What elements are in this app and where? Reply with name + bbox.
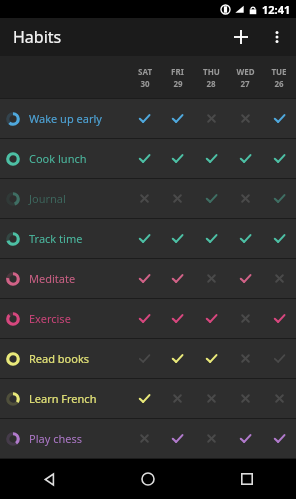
staticText: Meditate: [29, 271, 76, 286]
button[interactable]: [228, 353, 262, 364]
button[interactable]: Wake up early: [0, 99, 296, 138]
staticText: TUE: [271, 66, 287, 77]
button[interactable]: [161, 112, 194, 125]
button[interactable]: [228, 232, 262, 245]
staticText: Learn French: [29, 391, 97, 406]
button[interactable]: Add habit: [222, 18, 260, 56]
button[interactable]: [262, 273, 296, 284]
button[interactable]: Journal: [0, 179, 296, 218]
button[interactable]: [194, 113, 228, 124]
button[interactable]: [194, 152, 228, 165]
button[interactable]: [194, 393, 228, 404]
button[interactable]: [262, 352, 296, 365]
staticText: SAT: [138, 66, 152, 77]
button[interactable]: Recent apps: [197, 459, 296, 499]
button[interactable]: [194, 433, 228, 444]
button[interactable]: [262, 232, 296, 245]
button[interactable]: [128, 112, 161, 125]
button[interactable]: [228, 272, 262, 285]
button[interactable]: [161, 312, 194, 325]
staticText: WED: [236, 66, 255, 77]
button[interactable]: Track time: [0, 219, 296, 258]
button[interactable]: [161, 432, 194, 445]
button[interactable]: [194, 232, 228, 245]
button[interactable]: [161, 352, 194, 365]
staticText: 12:41: [262, 2, 291, 17]
button[interactable]: [228, 313, 262, 324]
staticText: Read books: [29, 351, 90, 366]
button[interactable]: [194, 192, 228, 205]
button[interactable]: [228, 393, 262, 404]
button[interactable]: [228, 193, 262, 204]
staticText: 28: [206, 78, 216, 89]
button[interactable]: [161, 193, 194, 204]
staticText: Cook lunch: [29, 151, 87, 166]
button[interactable]: [194, 352, 228, 365]
button[interactable]: [161, 232, 194, 245]
button[interactable]: [262, 432, 296, 445]
button[interactable]: Home: [98, 459, 197, 499]
button[interactable]: [194, 273, 228, 284]
button[interactable]: [262, 152, 296, 165]
button[interactable]: [228, 152, 262, 165]
button[interactable]: [128, 152, 161, 165]
button[interactable]: [161, 272, 194, 285]
staticText: 26: [274, 78, 284, 89]
staticText: Wake up early: [29, 111, 102, 126]
button[interactable]: [128, 312, 161, 325]
button[interactable]: [128, 232, 161, 245]
button[interactable]: [128, 272, 161, 285]
staticText: Habits: [13, 26, 62, 48]
button[interactable]: [262, 312, 296, 325]
button[interactable]: [161, 152, 194, 165]
button[interactable]: Cook lunch: [0, 139, 296, 178]
button[interactable]: [128, 193, 161, 204]
staticText: FRI: [171, 66, 184, 77]
button[interactable]: More options: [260, 20, 294, 54]
staticText: THU: [203, 66, 220, 77]
button[interactable]: Read books: [0, 339, 296, 378]
button[interactable]: [228, 113, 262, 124]
button[interactable]: [128, 433, 161, 444]
staticText: 27: [240, 78, 250, 89]
button[interactable]: [262, 393, 296, 404]
button[interactable]: [262, 192, 296, 205]
button[interactable]: Meditate: [0, 259, 296, 298]
button[interactable]: [228, 432, 262, 445]
button[interactable]: Play chess: [0, 419, 296, 458]
button[interactable]: [128, 352, 161, 365]
button[interactable]: [194, 312, 228, 325]
button[interactable]: [128, 392, 161, 405]
button[interactable]: [262, 112, 296, 125]
staticText: Journal: [29, 191, 66, 206]
staticText: Play chess: [29, 431, 82, 446]
button[interactable]: Back: [0, 459, 98, 499]
button[interactable]: Exercise: [0, 299, 296, 338]
button[interactable]: [161, 393, 194, 404]
staticText: Track time: [29, 231, 83, 246]
staticText: 30: [140, 78, 150, 89]
staticText: 29: [173, 78, 183, 89]
button[interactable]: Learn French: [0, 379, 296, 418]
staticText: Exercise: [29, 311, 71, 326]
